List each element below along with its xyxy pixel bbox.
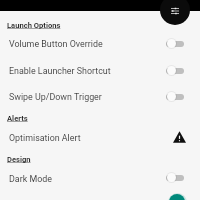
button[interactable]: Off (166, 38, 184, 49)
staticText: Dark Mode (9, 174, 52, 184)
button[interactable]: Tune settings (160, 0, 190, 25)
staticText: Launch Options (7, 21, 61, 30)
staticText: Swipe Up/Down Trigger (9, 92, 102, 102)
staticText: Optimisation Alert (9, 133, 81, 143)
staticText: Enable Launcher Shortcut (9, 66, 111, 76)
staticText: Design (7, 155, 31, 164)
button[interactable]: On (167, 192, 187, 200)
staticText: Volume Button Override (9, 39, 103, 49)
button[interactable]: Design (0, 150, 200, 164)
button[interactable]: Volume Button Override (0, 30, 200, 56)
button[interactable]: Warning (173, 131, 186, 143)
button[interactable]: Dark Mode (0, 165, 200, 191)
button[interactable]: Off (166, 91, 184, 102)
staticText: Alerts (7, 114, 28, 123)
button[interactable]: Optimisation Alert (0, 124, 200, 150)
button[interactable]: Launch Options (0, 16, 200, 30)
button[interactable]: Alerts (0, 109, 200, 123)
button[interactable]: Off (166, 65, 184, 76)
button[interactable]: Swipe Up/Down Trigger (0, 83, 200, 109)
button[interactable]: Off (166, 172, 184, 183)
button[interactable]: Enable Launcher Shortcut (0, 57, 200, 83)
